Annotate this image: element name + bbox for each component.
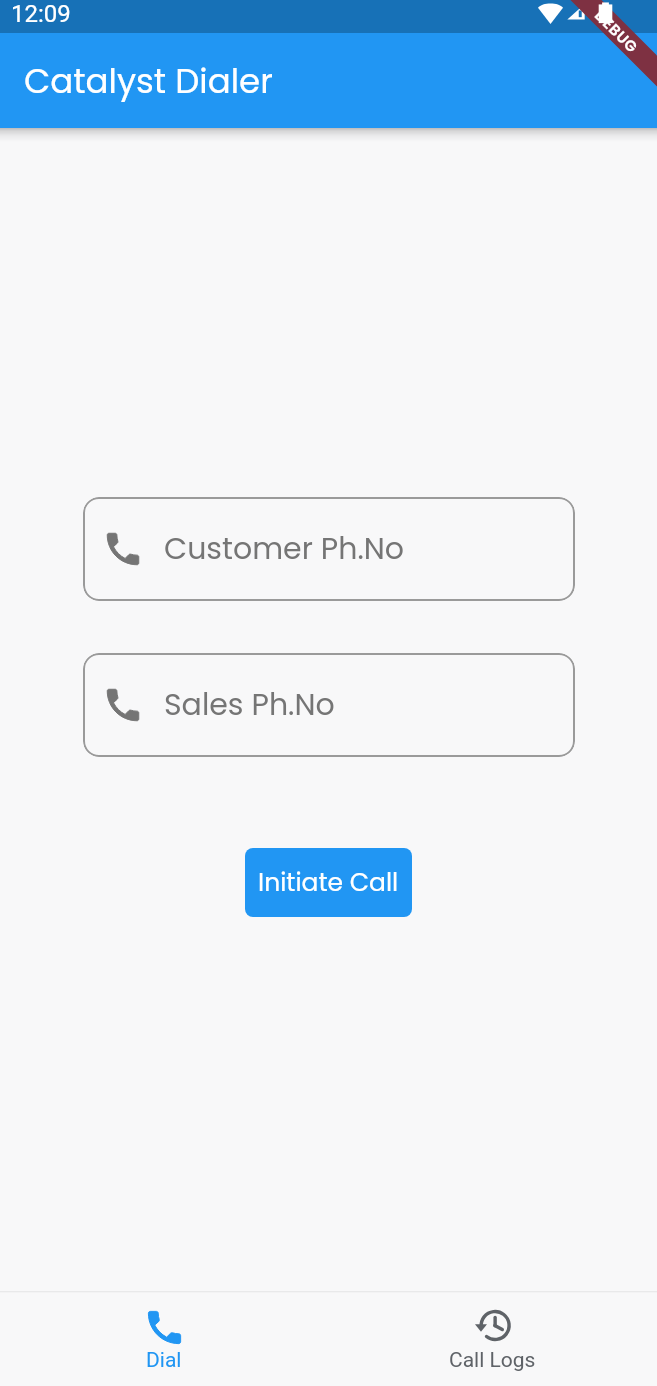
- staticText: DEBUG: [590, 5, 643, 58]
- staticText: Sales Ph.No: [164, 684, 335, 726]
- staticText: Call Logs: [449, 1348, 536, 1373]
- staticText: Initiate Call: [258, 865, 399, 900]
- staticText: Dial: [146, 1348, 182, 1373]
- button[interactable]: Sales Ph.No: [83, 653, 575, 757]
- staticText: 12:09: [11, 0, 71, 28]
- staticText: Catalyst Dialer: [24, 57, 273, 105]
- button[interactable]: Call Logs: [328, 1293, 657, 1386]
- staticText: Customer Ph.No: [164, 528, 404, 570]
- button[interactable]: Initiate Call: [245, 848, 412, 917]
- button[interactable]: Dial: [0, 1293, 328, 1386]
- button[interactable]: Customer Ph.No: [83, 497, 575, 601]
